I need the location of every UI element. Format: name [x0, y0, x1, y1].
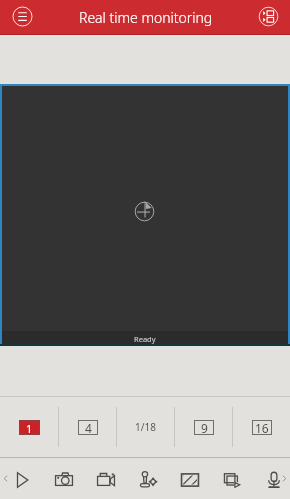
staticText: 1 — [26, 421, 33, 434]
button[interactable]: 4 — [59, 397, 116, 457]
button[interactable]: 1 — [0, 397, 58, 457]
staticText: 9 — [201, 420, 208, 435]
button[interactable]: 9 — [175, 397, 232, 457]
button[interactable]: Image — [175, 465, 205, 495]
staticText: 1/18 — [135, 420, 156, 434]
button[interactable]: Playback — [217, 465, 247, 495]
button[interactable]: Talk — [259, 465, 289, 495]
staticText: 16 — [255, 420, 269, 435]
staticText: Real time monitoring — [79, 8, 213, 27]
button[interactable]: Play — [7, 465, 37, 495]
button[interactable]: Layout — [254, 2, 283, 31]
button[interactable]: PTZ control — [133, 465, 163, 495]
staticText: Ready — [134, 334, 156, 344]
button[interactable]: Record — [91, 465, 121, 495]
button[interactable]: 1/18 — [117, 397, 174, 457]
button[interactable]: Snapshot — [49, 465, 79, 495]
button[interactable]: Menu — [7, 1, 38, 32]
staticText: 4 — [85, 420, 92, 435]
button[interactable]: 16 — [233, 397, 290, 457]
